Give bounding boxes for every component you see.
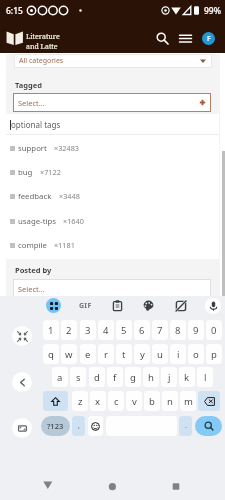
button[interactable]: j: [161, 367, 177, 387]
button[interactable]: Select...: [13, 279, 211, 298]
button[interactable]: y: [134, 344, 150, 364]
staticText: usage-tips: [18, 216, 56, 227]
button[interactable]: 8: [170, 320, 186, 340]
button[interactable]: a: [52, 367, 68, 387]
button[interactable]: k: [179, 367, 195, 387]
button[interactable]: 0: [206, 320, 222, 340]
button[interactable]: compile: [6, 233, 219, 257]
button[interactable]: z: [72, 391, 88, 411]
button[interactable]: v: [126, 391, 142, 411]
staticText: ×32483: [54, 143, 80, 153]
button[interactable]: q: [43, 344, 59, 364]
button[interactable]: h: [143, 367, 159, 387]
button[interactable]: d: [89, 367, 105, 387]
button[interactable]: x: [90, 391, 106, 411]
button[interactable]: Stickers: [173, 298, 188, 313]
staticText: 9: [193, 324, 199, 337]
button[interactable]: Search: [152, 28, 172, 48]
button[interactable]: Voice input: [205, 298, 221, 314]
button[interactable]: Apps: [46, 298, 61, 313]
button[interactable]: 3: [80, 320, 96, 340]
staticText: All categories: [19, 56, 64, 66]
button[interactable]: Emoji: [88, 416, 103, 436]
staticText: F: [207, 34, 211, 44]
button[interactable]: ?123: [41, 416, 70, 436]
button[interactable]: Profile: [202, 32, 215, 45]
button[interactable]: r: [98, 344, 114, 364]
button[interactable]: 6: [134, 320, 150, 340]
button[interactable]: Resize keyboard: [12, 326, 32, 346]
staticText: .: [185, 421, 187, 431]
staticText: Posted by: [15, 265, 52, 275]
button[interactable]: 1: [43, 320, 59, 340]
button[interactable]: w: [61, 344, 77, 364]
button[interactable]: g: [125, 367, 141, 387]
staticText: s: [76, 371, 81, 384]
button[interactable]: Back: [12, 372, 32, 392]
button[interactable]: Add tag: [198, 98, 207, 107]
button[interactable]: t: [116, 344, 132, 364]
staticText: z: [78, 395, 83, 408]
button[interactable]: usage-tips: [6, 209, 219, 233]
button[interactable]: Menu: [175, 28, 195, 48]
button[interactable]: 2: [61, 320, 77, 340]
staticText: ×1640: [63, 216, 84, 226]
button[interactable]: 7: [152, 320, 168, 340]
button[interactable]: support: [6, 136, 219, 160]
button[interactable]: f: [107, 367, 123, 387]
button[interactable]: All categories: [14, 54, 212, 68]
staticText: 8: [175, 324, 181, 337]
button[interactable]: bug: [6, 160, 219, 184]
button[interactable]: Select...: [13, 93, 211, 112]
button[interactable]: s: [70, 367, 86, 387]
staticText: 4: [103, 324, 109, 337]
staticText: i: [177, 348, 180, 361]
staticText: q: [48, 348, 54, 361]
staticText: r: [104, 348, 108, 361]
staticText: p: [211, 348, 217, 361]
staticText: 99%: [204, 5, 221, 17]
button[interactable]: i: [170, 344, 186, 364]
button[interactable]: .: [179, 416, 192, 436]
staticText: f: [113, 371, 117, 384]
button[interactable]: Backspace: [198, 391, 220, 411]
staticText: e: [85, 348, 91, 361]
button[interactable]: 9: [188, 320, 204, 340]
staticText: u: [157, 348, 163, 361]
button[interactable]: ,: [72, 416, 85, 436]
button[interactable]: Resize keyboard: [12, 418, 32, 438]
staticText: 1: [48, 324, 54, 337]
staticText: l: [204, 371, 207, 384]
staticText: 6:15: [6, 5, 23, 17]
button[interactable]: GIF: [76, 298, 95, 313]
button[interactable]: b: [144, 391, 160, 411]
button[interactable]: 5: [116, 320, 132, 340]
button[interactable]: n: [162, 391, 178, 411]
staticText: o: [193, 348, 199, 361]
button[interactable]: 4: [98, 320, 114, 340]
staticText: support: [18, 143, 47, 154]
button[interactable]: o: [188, 344, 204, 364]
staticText: ×7122: [40, 167, 61, 177]
staticText: optional tags: [11, 119, 61, 130]
button[interactable]: Shift: [43, 391, 68, 411]
button[interactable]: u: [152, 344, 168, 364]
button[interactable]: Themes: [141, 298, 156, 313]
button[interactable]: Search: [195, 416, 222, 436]
button[interactable]: Clipboard: [110, 298, 125, 313]
staticText: g: [130, 371, 136, 384]
button[interactable]: e: [80, 344, 96, 364]
button[interactable]: p: [206, 344, 222, 364]
button[interactable]: feedback: [6, 184, 219, 208]
staticText: c: [114, 395, 119, 408]
button[interactable]: c: [108, 391, 124, 411]
staticText: j: [168, 371, 171, 384]
staticText: ×1181: [54, 240, 75, 250]
staticText: t: [122, 348, 126, 361]
button[interactable]: l: [197, 367, 213, 387]
staticText: b: [149, 395, 155, 408]
staticText: Tagged: [15, 80, 42, 90]
staticText: ×3448: [59, 191, 80, 201]
button[interactable]: m: [180, 391, 196, 411]
